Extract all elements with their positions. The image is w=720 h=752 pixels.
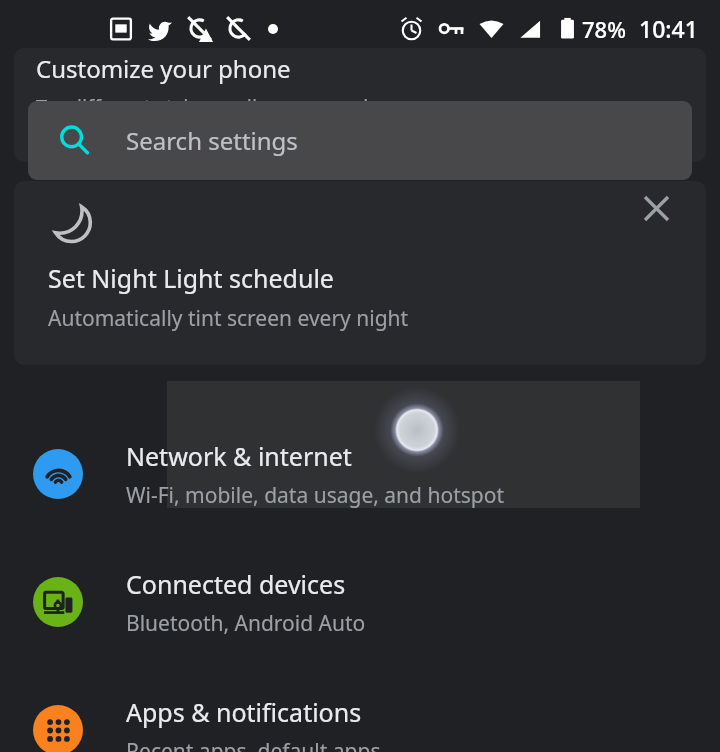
staticText: Apps & notifications	[126, 695, 362, 729]
staticText: Wi-Fi, mobile, data usage, and hotspot	[126, 481, 504, 510]
staticText: Customize your phone	[36, 52, 291, 85]
button[interactable]: Dismiss suggestion	[630, 182, 682, 234]
button[interactable]: Connected devices	[0, 538, 720, 666]
staticText: Try different styles, wallpapers, and mo…	[36, 93, 424, 120]
staticText: Network & internet	[126, 439, 352, 473]
staticText: Bluetooth, Android Auto	[126, 609, 366, 638]
staticText: 10:41	[639, 13, 698, 44]
staticText: 78%	[582, 14, 626, 44]
staticText: Automatically tint screen every night	[48, 304, 409, 333]
button[interactable]: Search settings	[28, 101, 692, 180]
staticText: Recent apps, default apps	[126, 737, 381, 752]
staticText: Connected devices	[126, 567, 346, 601]
button[interactable]: Customize your phone	[14, 48, 706, 162]
button[interactable]: Apps & notifications	[0, 666, 720, 752]
button[interactable]: Dismiss suggestion	[14, 181, 706, 365]
staticText: Set Night Light schedule	[48, 261, 334, 295]
button[interactable]: Network & internet	[0, 410, 720, 538]
staticText: Search settings	[126, 124, 298, 157]
